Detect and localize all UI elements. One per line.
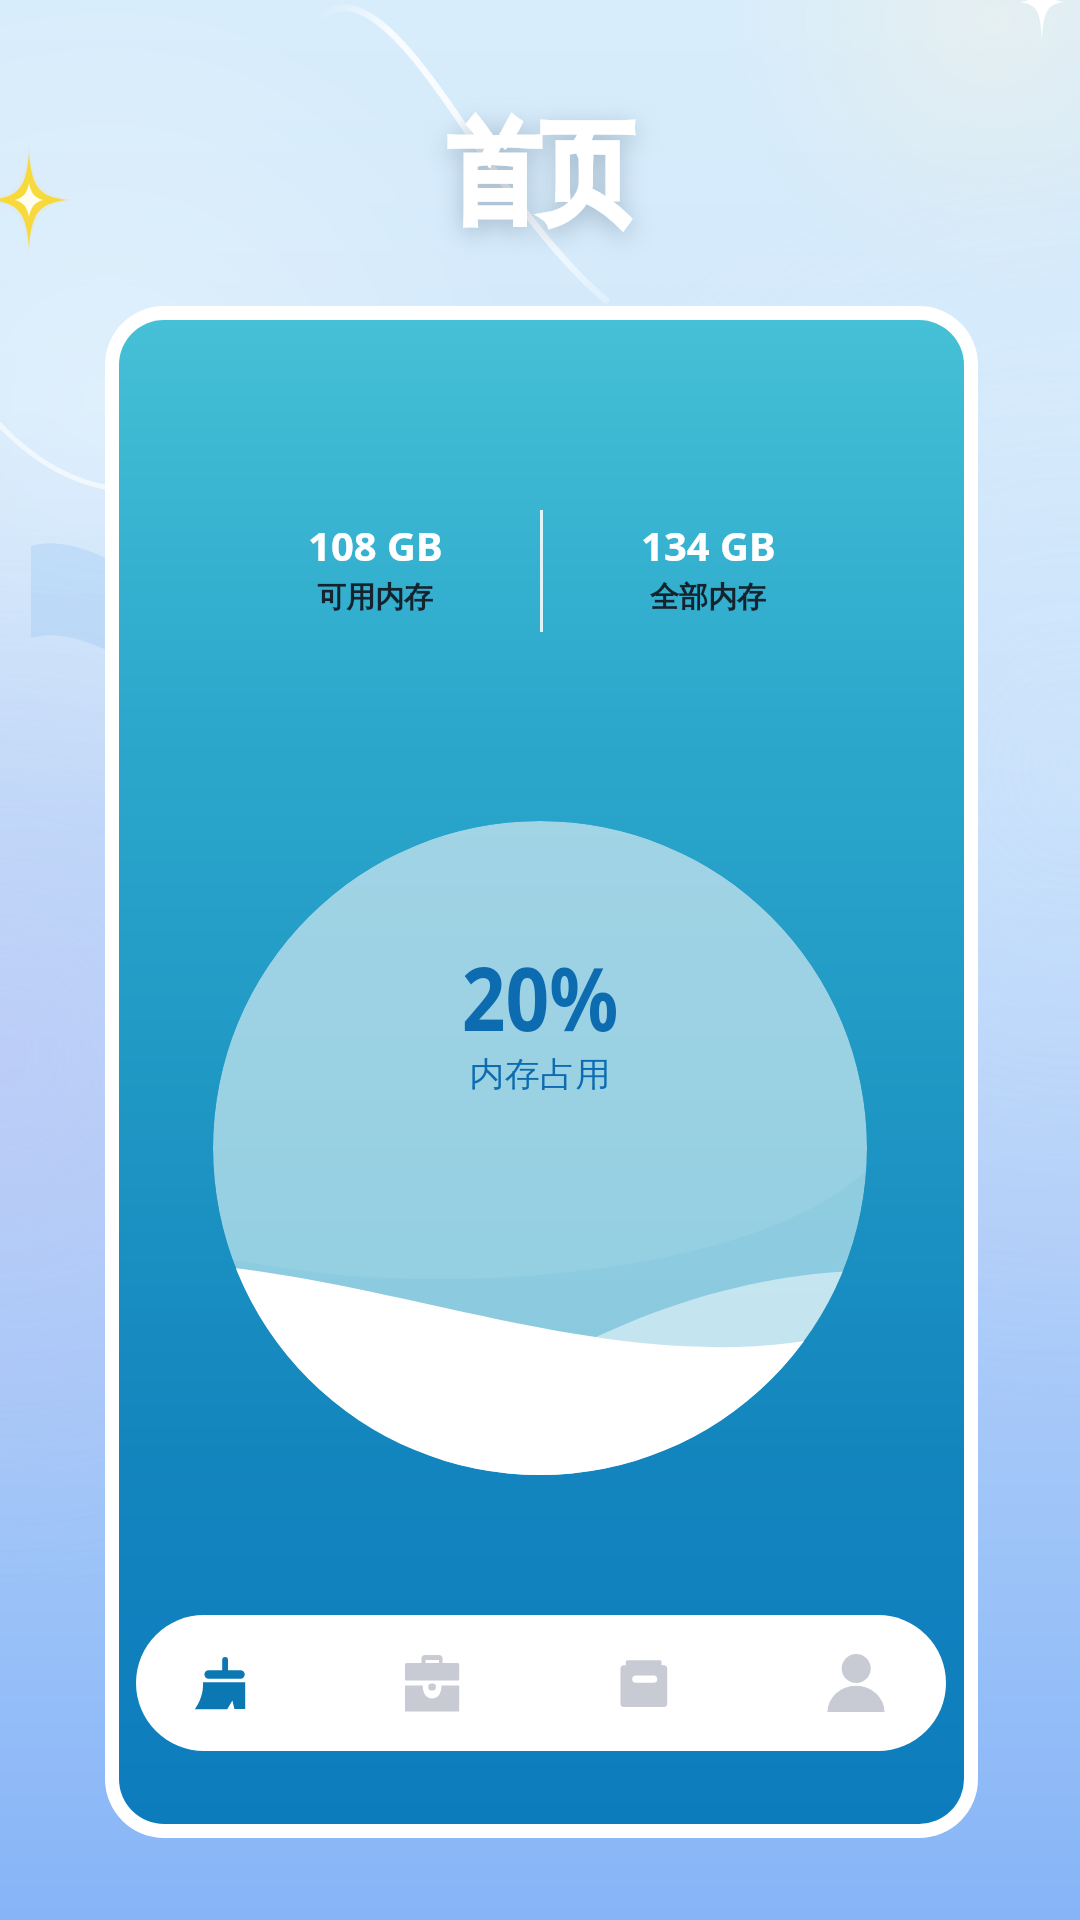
staticText: 首页 — [447, 104, 633, 245]
button[interactable]: 存储 — [537, 1615, 749, 1751]
staticText: 20% — [462, 938, 619, 1056]
staticText: 134 GB — [641, 518, 776, 572]
staticText: 可用内存 — [317, 579, 433, 616]
button[interactable]: 工具箱 — [326, 1615, 537, 1751]
button[interactable]: 我的 — [749, 1615, 946, 1751]
staticText: 内存占用 — [469, 1053, 611, 1096]
button[interactable]: 清理 — [136, 1615, 326, 1751]
staticText: 全部内存 — [650, 579, 766, 616]
staticText: 108 GB — [308, 518, 443, 572]
